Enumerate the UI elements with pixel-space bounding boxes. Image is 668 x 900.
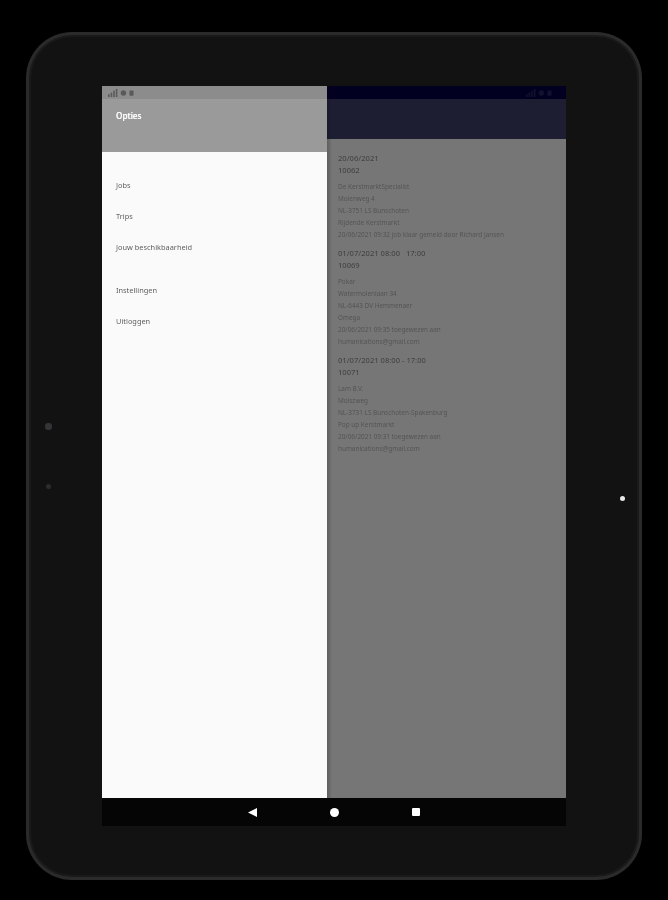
- staticText: 01/07/2021 08:00 - 17:00: [338, 355, 426, 365]
- staticText: NL-3731 LS Bunschoten-Spakenburg: [338, 408, 448, 417]
- staticText: 10069: [338, 260, 360, 270]
- button[interactable]: Recent apps: [396, 798, 436, 826]
- staticText: Trips: [116, 211, 133, 221]
- staticText: humanications@gmail.com: [338, 337, 420, 346]
- button[interactable]: Uitloggen: [102, 310, 327, 331]
- staticText: 10071: [338, 367, 360, 377]
- button[interactable]: Home: [314, 798, 354, 826]
- staticText: 20/06/2021 09:31 toegewezen aan: [338, 432, 441, 441]
- button[interactable]: Jouw beschikbaarheid: [102, 236, 327, 257]
- staticText: 20/06/2021 09:35 toegewezen aan: [338, 325, 441, 334]
- staticText: Omega: [338, 313, 361, 322]
- staticText: 20/06/2021: [338, 153, 379, 163]
- button[interactable]: Instellingen: [102, 279, 327, 300]
- button[interactable]: Opties: [102, 99, 327, 152]
- staticText: NL-3751 LS Bunschoten: [338, 206, 409, 215]
- staticText: Watermolenlaan 34: [338, 289, 397, 298]
- staticText: Rijdende Kerstmarkt: [338, 218, 400, 227]
- staticText: Jobs: [116, 180, 131, 190]
- button[interactable]: 01/07/2021 08:00 17:00: [338, 248, 552, 346]
- staticText: Jouw beschikbaarheid: [116, 242, 193, 252]
- staticText: De KerstmarktSpecialist: [338, 182, 410, 191]
- staticText: Molszweg: [338, 396, 368, 405]
- staticText: Uitloggen: [116, 316, 151, 326]
- staticText: 20/06/2021 09:32 job klaar gemeld door R…: [338, 230, 504, 239]
- staticText: 10062: [338, 165, 360, 175]
- staticText: Pokar: [338, 277, 356, 286]
- staticText: NL-6443 DV Hemmenaer: [338, 301, 413, 310]
- staticText: Opties: [116, 110, 142, 121]
- button[interactable]: Trips: [102, 205, 327, 226]
- button[interactable]: Jobs: [102, 174, 327, 195]
- staticText: 01/07/2021 08:00 17:00: [338, 248, 426, 258]
- button[interactable]: Back: [232, 798, 272, 826]
- staticText: Instellingen: [116, 285, 158, 295]
- staticText: Molenweg 4: [338, 194, 375, 203]
- button[interactable]: 20/06/2021: [338, 153, 552, 239]
- staticText: Pop up Kerstmarkt: [338, 420, 395, 429]
- button[interactable]: 01/07/2021 08:00 - 17:00: [338, 355, 552, 453]
- staticText: Lam B.V.: [338, 384, 364, 393]
- staticText: humanications@gmail.com: [338, 444, 420, 453]
